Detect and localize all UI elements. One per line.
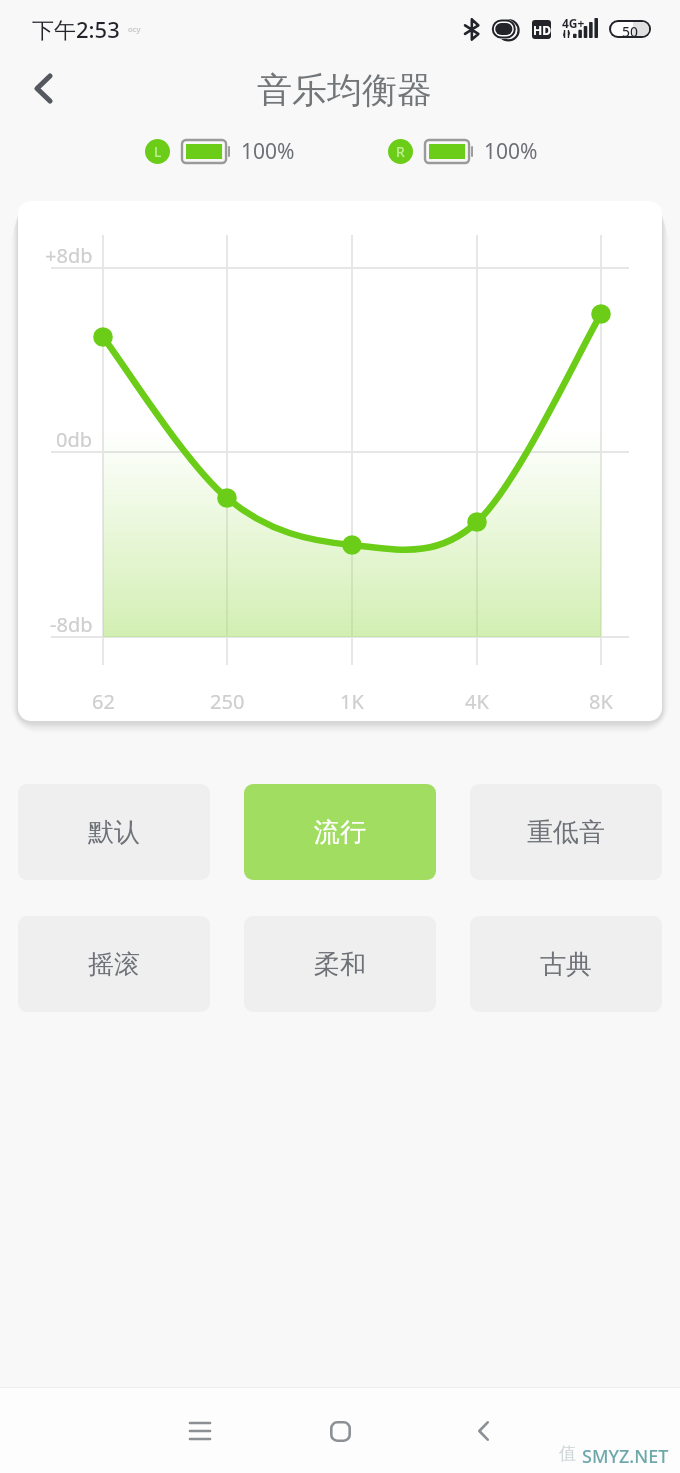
button[interactable]: Recent apps — [160, 1391, 240, 1471]
staticText: -8db — [50, 611, 93, 637]
staticText: 音乐均衡器 — [257, 68, 432, 112]
staticText: +8db — [45, 242, 93, 268]
button[interactable]: Back — [18, 63, 68, 113]
staticText: R — [396, 142, 405, 161]
staticText: 100% — [241, 137, 295, 166]
button[interactable]: 古典 — [470, 916, 662, 1012]
button[interactable]: Back — [443, 1391, 523, 1471]
staticText: 1K — [340, 688, 364, 715]
button[interactable]: 流行 — [244, 784, 436, 880]
staticText: HD — [533, 22, 551, 38]
staticText: 250 — [210, 688, 245, 715]
button[interactable]: 重低音 — [470, 784, 662, 880]
staticText: 62 — [92, 688, 115, 715]
staticText: 默认 — [88, 816, 140, 849]
staticText: 100% — [484, 137, 538, 166]
button[interactable]: 默认 — [18, 784, 210, 880]
staticText: ᵒᶜʸ — [128, 23, 141, 39]
staticText: 值 — [559, 1443, 576, 1464]
button[interactable]: 摇滚 — [18, 916, 210, 1012]
staticText: 50 — [622, 22, 639, 36]
staticText: 流行 — [314, 816, 366, 849]
button[interactable]: Home — [300, 1391, 380, 1471]
staticText: 4K — [465, 688, 489, 715]
staticText: L — [154, 142, 162, 161]
staticText: 柔和 — [314, 948, 366, 981]
staticText: 下午2:53 — [32, 14, 120, 44]
staticText: SMYZ.NET — [582, 1444, 669, 1469]
button[interactable]: 柔和 — [244, 916, 436, 1012]
staticText: 4G+ — [562, 15, 585, 31]
staticText: 8K — [589, 688, 613, 715]
staticText: 重低音 — [527, 816, 605, 849]
staticText: 0db — [56, 426, 93, 452]
staticText: 摇滚 — [88, 948, 140, 981]
staticText: 古典 — [540, 948, 592, 981]
